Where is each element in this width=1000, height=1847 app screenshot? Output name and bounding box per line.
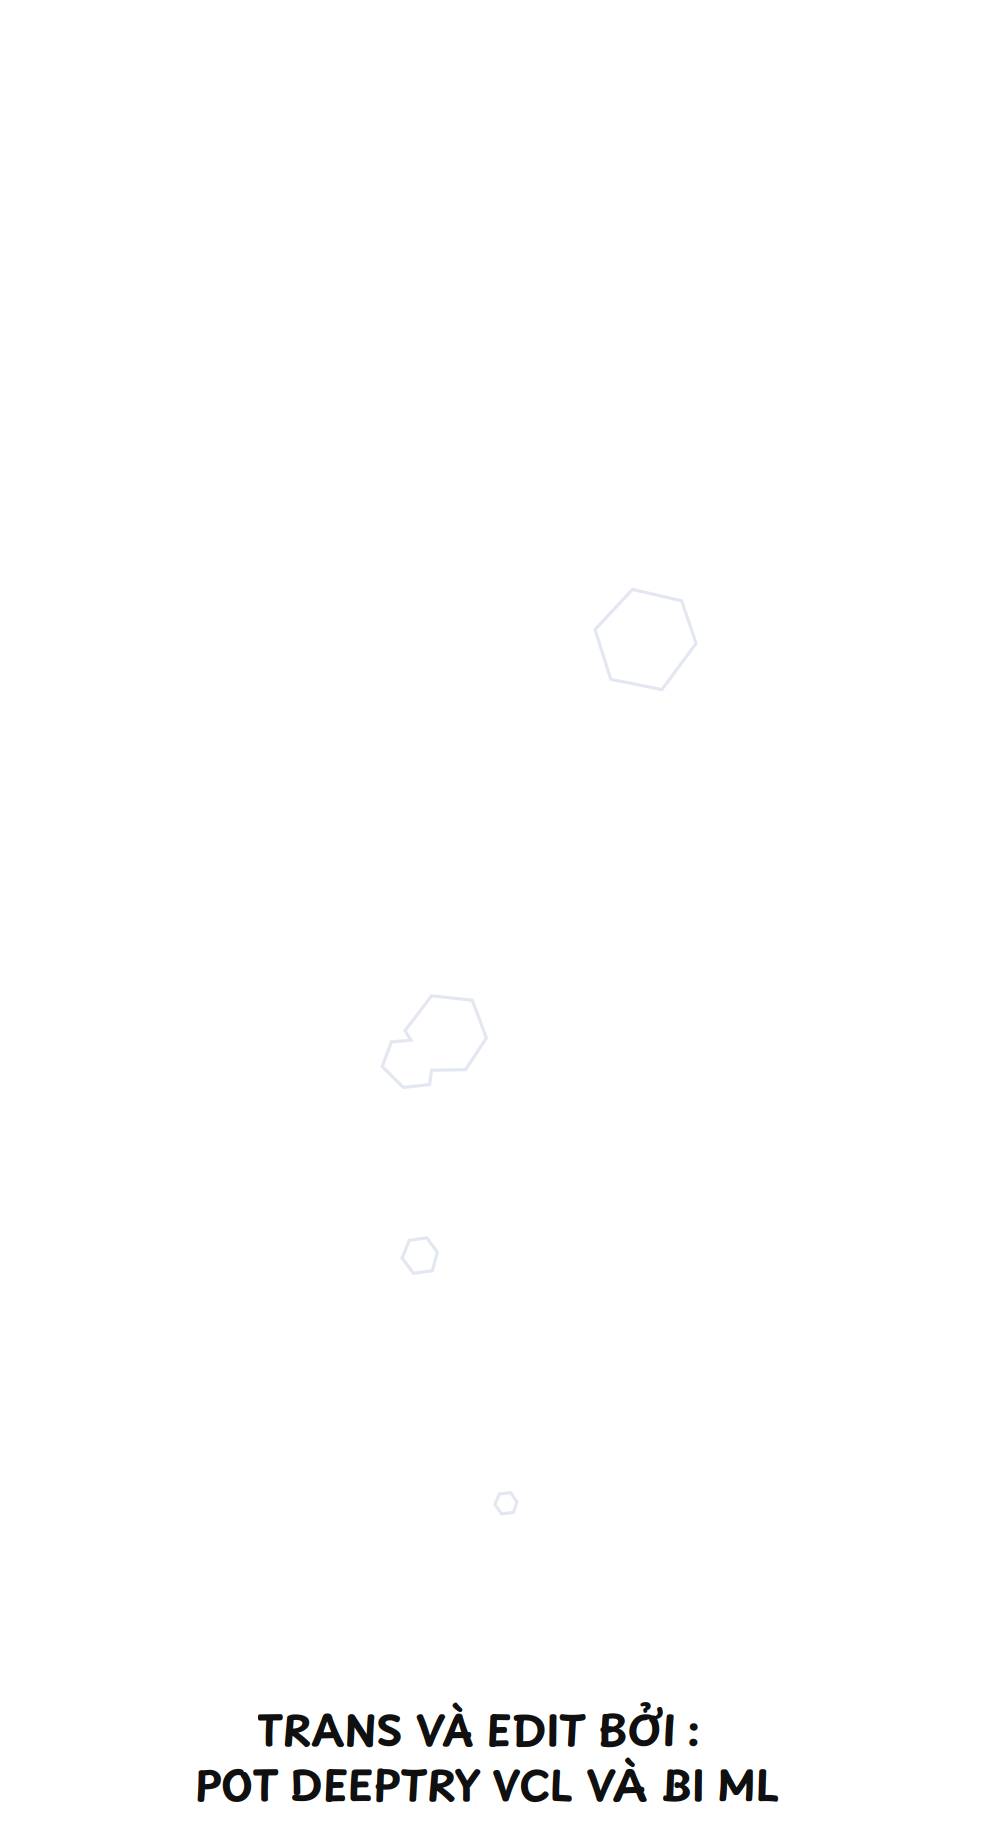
staticText: TRANS VÀ EDIT BỞI : <box>256 1698 699 1760</box>
staticText: POT DEEPTRY VCL VÀ BI ML <box>195 1753 779 1815</box>
